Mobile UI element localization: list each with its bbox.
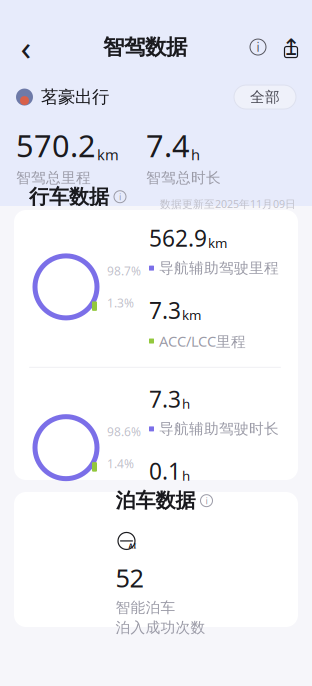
staticText: 导航辅助驾驶里程: [159, 259, 279, 277]
staticText: km: [208, 234, 227, 252]
staticText: 7.4: [146, 125, 190, 166]
staticText: 7.3: [149, 384, 181, 414]
staticText: ACC/LCC里程: [159, 331, 246, 351]
staticText: h: [182, 395, 190, 412]
button[interactable]: Share: [274, 29, 308, 65]
button[interactable]: Information: [242, 29, 274, 65]
staticText: ACC/LCC时长: [159, 492, 246, 512]
staticText: 智能泊车: [115, 599, 175, 617]
staticText: i: [119, 190, 121, 203]
button[interactable]: Back: [4, 29, 48, 65]
staticText: 52: [115, 561, 143, 594]
staticText: 0.1: [149, 456, 181, 486]
staticText: 导航辅助驾驶时长: [159, 420, 279, 438]
staticText: km: [182, 306, 201, 324]
staticText: 1.4%: [107, 456, 134, 472]
staticText: AI: [128, 541, 136, 550]
staticText: h: [191, 145, 200, 164]
staticText: 智驾总里程: [16, 169, 91, 187]
staticText: i: [256, 39, 259, 55]
staticText: 98.7%: [107, 263, 141, 279]
staticText: 茗豪出行: [41, 86, 109, 108]
staticText: h: [182, 467, 190, 484]
staticText: 562.9: [149, 223, 207, 253]
staticText: 泊入成功次数: [115, 619, 205, 637]
staticText: ‹: [20, 24, 31, 70]
staticText: 7.3: [149, 295, 181, 325]
staticText: 数据更新至2025年11月09日: [160, 197, 296, 211]
staticText: 1.3%: [107, 295, 134, 311]
staticText: km: [97, 145, 119, 164]
staticText: 98.6%: [107, 424, 141, 440]
staticText: 570.2: [16, 125, 96, 166]
staticText: i: [205, 494, 207, 507]
staticText: 智驾总时长: [146, 169, 221, 187]
staticText: ↥: [281, 34, 300, 60]
staticText: 全部: [250, 88, 280, 106]
staticText: 泊车数据: [115, 488, 195, 513]
staticText: 智驾数据: [103, 34, 187, 60]
button[interactable]: 全部: [234, 85, 296, 109]
staticText: 行车数据: [29, 184, 109, 209]
